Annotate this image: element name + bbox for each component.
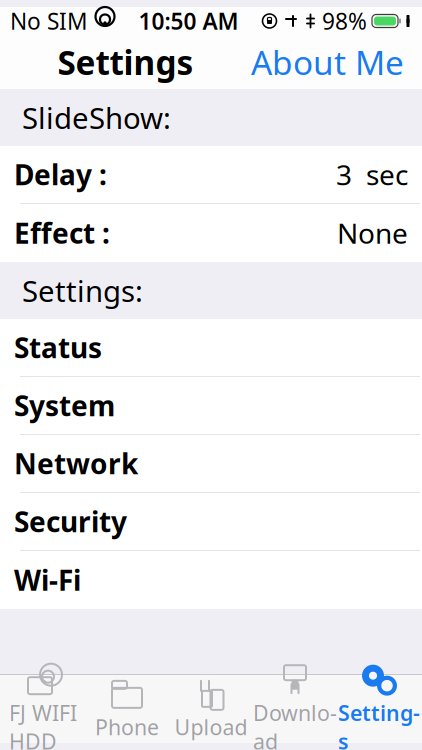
button[interactable]: Security	[0, 493, 422, 551]
button[interactable]: Download	[253, 675, 337, 743]
staticText: Settings:	[22, 271, 143, 310]
button[interactable]: FJ WIFI HDD	[1, 675, 85, 743]
button[interactable]: Phone	[85, 675, 169, 743]
button[interactable]: Status	[0, 319, 422, 377]
staticText: 98%	[322, 6, 367, 36]
staticText: Network	[14, 445, 138, 482]
staticText: 3 sec	[336, 156, 408, 193]
button[interactable]: Wi-Fi	[0, 551, 422, 609]
staticText: Settings	[57, 40, 193, 84]
staticText: Delay :	[14, 156, 107, 193]
staticText: FJ WIFI HDD	[9, 699, 77, 750]
staticText: Effect :	[14, 214, 110, 252]
staticText: Settings	[338, 699, 420, 750]
staticText: About Me	[251, 40, 404, 84]
staticText: Upload	[174, 713, 247, 741]
staticText: Wi-Fi	[14, 561, 81, 599]
button[interactable]: Upload	[169, 675, 253, 743]
button[interactable]: Network	[0, 435, 422, 493]
button[interactable]: Settings	[337, 675, 421, 743]
staticText: Download	[253, 699, 337, 750]
button[interactable]: Delay :	[0, 146, 422, 204]
staticText: System	[14, 387, 115, 424]
button[interactable]: Effect :	[0, 204, 422, 262]
staticText: No SIM	[10, 6, 88, 36]
staticText: None	[337, 214, 408, 252]
staticText: 10:50 AM	[138, 6, 238, 36]
button[interactable]: About Me	[251, 32, 422, 92]
staticText: Status	[14, 329, 102, 366]
staticText: Phone	[95, 713, 159, 741]
staticText: Security	[14, 503, 127, 540]
button[interactable]: System	[0, 377, 422, 435]
staticText: SlideShow:	[22, 98, 171, 137]
